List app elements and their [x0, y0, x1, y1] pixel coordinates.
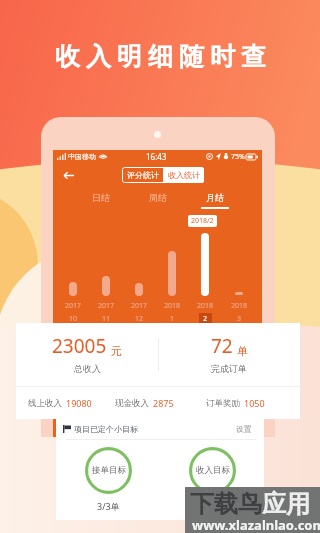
- button[interactable]: 2017: [57, 215, 89, 320]
- staticText: 周结: [149, 192, 167, 203]
- staticText: 2018/2: [191, 216, 214, 226]
- staticText: 项目已定个小目标: [74, 424, 138, 434]
- staticText: 2018: [231, 301, 248, 311]
- button[interactable]: 2018: [189, 215, 221, 320]
- staticText: 收入明细随时查: [52, 41, 269, 72]
- staticText: 2018: [197, 301, 214, 311]
- staticText: 完成订单: [211, 363, 247, 374]
- button[interactable]: 23005: [16, 323, 158, 386]
- staticText: 75%: [231, 152, 245, 162]
- staticText: 12: [135, 314, 144, 324]
- staticText: 元: [111, 344, 122, 358]
- staticText: 2017: [131, 301, 148, 311]
- staticText: 72: [211, 333, 233, 359]
- staticText: 中国移动: [68, 152, 96, 161]
- staticText: 下载鸟: [190, 489, 262, 519]
- staticText: 2017: [98, 301, 115, 311]
- staticText: 2875: [153, 397, 174, 409]
- button[interactable]: 2017: [90, 215, 122, 320]
- button[interactable]: 2018: [156, 215, 188, 320]
- staticText: 应用: [262, 489, 310, 519]
- staticText: 2: [203, 314, 208, 324]
- staticText: 总收入: [74, 363, 101, 374]
- staticText: www.xlazalnlao.com: [192, 516, 320, 533]
- button[interactable]: 2018: [223, 215, 255, 320]
- button[interactable]: 月结: [186, 192, 243, 220]
- staticText: 收入统计: [168, 170, 200, 180]
- staticText: 3/3单: [97, 500, 120, 512]
- button[interactable]: 评分统计: [122, 167, 163, 183]
- staticText: 1050: [244, 397, 265, 409]
- button[interactable]: 收入目标: [160, 440, 264, 520]
- staticText: 10: [69, 314, 78, 324]
- staticText: 订单奖励: [206, 398, 240, 409]
- staticText: 2017: [65, 301, 82, 311]
- button[interactable]: 周结: [129, 192, 186, 220]
- staticText: 1: [170, 314, 175, 324]
- button[interactable]: 设置: [236, 424, 252, 434]
- button[interactable]: 日结: [73, 192, 129, 220]
- staticText: 23005: [52, 333, 107, 359]
- staticText: 评分统计: [127, 170, 159, 180]
- staticText: 月结: [206, 192, 224, 203]
- button[interactable]: 收入统计: [163, 167, 204, 183]
- button[interactable]: 72: [158, 323, 300, 386]
- staticText: 收入目标: [196, 465, 230, 476]
- staticText: 2018: [164, 301, 181, 311]
- staticText: 3: [237, 314, 242, 324]
- button[interactable]: Back: [58, 165, 78, 185]
- staticText: 11: [102, 314, 111, 324]
- button[interactable]: 接单目标: [56, 440, 160, 520]
- staticText: 接单目标: [92, 465, 126, 476]
- staticText: 19080: [66, 397, 92, 409]
- staticText: 单: [237, 344, 248, 358]
- staticText: 线上收入: [28, 398, 62, 409]
- staticText: 日结: [92, 192, 110, 203]
- staticText: 设置: [236, 424, 252, 434]
- staticText: 16:43: [146, 151, 167, 162]
- button[interactable]: 2017: [123, 215, 155, 320]
- staticText: 现金收入: [115, 398, 149, 409]
